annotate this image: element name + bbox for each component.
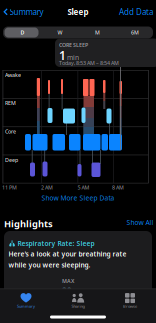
staticText: Deep bbox=[5, 156, 18, 164]
button[interactable]: Sharing bbox=[52, 290, 104, 312]
staticText: Core bbox=[5, 128, 16, 135]
staticText: W bbox=[57, 29, 62, 36]
staticText: 8 AM bbox=[112, 184, 124, 191]
button[interactable]: M bbox=[79, 26, 116, 38]
staticText: 5 AM bbox=[77, 184, 89, 191]
staticText: Summary bbox=[17, 304, 35, 309]
staticText: Add Data bbox=[119, 7, 153, 17]
staticText: MAX bbox=[62, 277, 74, 285]
staticText: 2 AM bbox=[41, 184, 53, 191]
staticText: Show More Sleep Data bbox=[41, 194, 114, 202]
staticText: REM bbox=[5, 99, 16, 107]
staticText: Sharing bbox=[71, 304, 84, 309]
staticText: Summary bbox=[9, 7, 43, 17]
button[interactable]: Show More Sleep Data bbox=[18, 193, 138, 203]
staticText: Today, 8:53 AM – 8:54 AM bbox=[59, 59, 119, 67]
button[interactable]: Browse bbox=[104, 290, 156, 312]
button[interactable]: Add Data bbox=[119, 5, 153, 19]
staticText: 6M bbox=[131, 29, 139, 36]
staticText: min bbox=[67, 53, 79, 62]
staticText: Respiratory Rate: Sleep bbox=[17, 239, 94, 248]
staticText: Highlights bbox=[4, 217, 53, 230]
staticText: CORE SLEEP bbox=[59, 41, 88, 49]
button[interactable]: W bbox=[41, 26, 78, 38]
staticText: D bbox=[20, 29, 24, 36]
staticText: Awake bbox=[5, 71, 21, 79]
staticText: 1 bbox=[59, 47, 66, 63]
staticText: 11 PM bbox=[2, 184, 17, 191]
button[interactable]: D bbox=[4, 26, 41, 38]
staticText: Sleep bbox=[67, 7, 88, 17]
staticText: 20 bbox=[62, 285, 72, 296]
button[interactable]: Summary bbox=[0, 290, 52, 312]
staticText: M bbox=[95, 29, 100, 36]
staticText: Browse bbox=[123, 304, 137, 309]
staticText: while you were sleeping. bbox=[8, 260, 90, 269]
button[interactable]: Show All bbox=[126, 218, 153, 226]
button[interactable]: Summary bbox=[2, 5, 43, 19]
staticText: Show All bbox=[126, 218, 153, 227]
staticText: Here's a look at your breathing rate bbox=[8, 249, 126, 258]
button[interactable]: 6M bbox=[116, 26, 153, 38]
button[interactable]: Respiratory Rate: Sleep bbox=[4, 231, 152, 323]
